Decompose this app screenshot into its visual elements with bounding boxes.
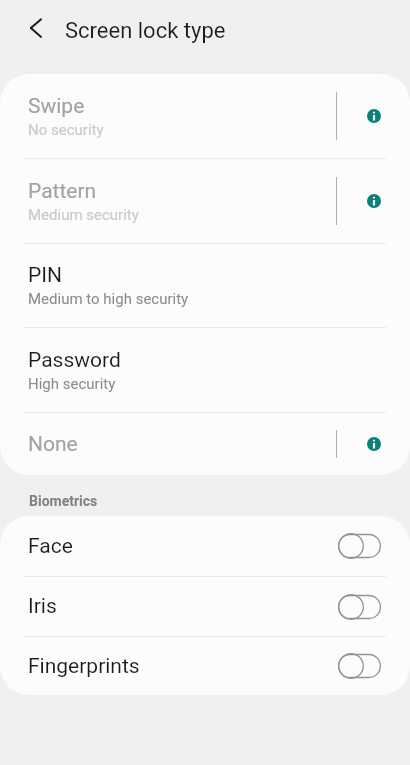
staticText: Medium to high security <box>28 290 189 308</box>
button[interactable]: About None <box>337 413 410 475</box>
staticText: None <box>28 432 78 457</box>
staticText: No security <box>28 121 104 139</box>
staticText: Fingerprints <box>28 654 338 679</box>
staticText: Password <box>28 348 121 373</box>
staticText: Pattern <box>28 179 97 204</box>
staticText: Biometrics <box>29 493 98 509</box>
button[interactable]: Navigate up <box>10 10 52 52</box>
staticText: High security <box>28 375 116 393</box>
button[interactable]: Fingerprints <box>0 637 410 695</box>
button[interactable]: About Swipe <box>337 74 410 158</box>
button[interactable]: About Pattern <box>337 159 410 243</box>
staticText: Swipe <box>28 94 85 119</box>
button[interactable]: Face <box>0 516 410 576</box>
button[interactable]: Swipe <box>0 74 410 158</box>
button[interactable]: Pattern <box>0 159 410 243</box>
staticText: PIN <box>28 263 62 288</box>
staticText: Screen lock type <box>65 18 226 44</box>
staticText: Medium security <box>28 206 139 224</box>
staticText: Iris <box>28 594 338 619</box>
staticText: Face <box>28 534 338 559</box>
button[interactable]: PIN <box>0 244 410 327</box>
button[interactable]: Password <box>0 328 410 412</box>
button[interactable]: None <box>0 413 410 475</box>
button[interactable]: Iris <box>0 577 410 636</box>
